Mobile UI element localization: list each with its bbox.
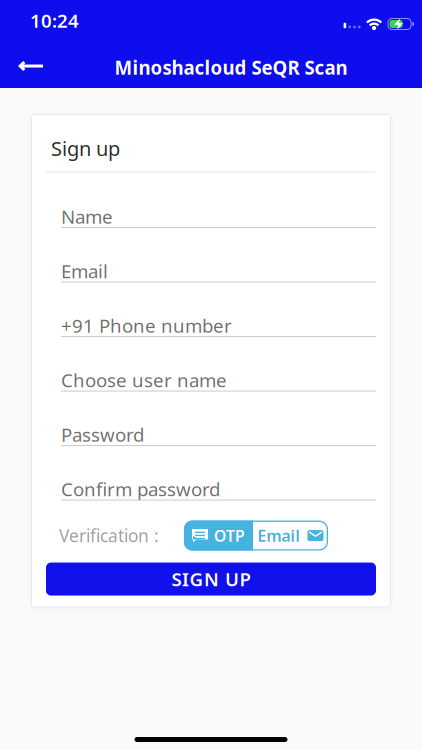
- button[interactable]: Password: [61, 392, 376, 446]
- staticText: Password: [61, 422, 144, 447]
- button[interactable]: Choose user name: [61, 337, 376, 392]
- staticText: OTP: [214, 525, 245, 546]
- staticText: Minoshacloud SeQR Scan: [114, 55, 347, 80]
- staticText: 10:24: [30, 8, 79, 33]
- button[interactable]: +91 Phone number: [61, 283, 376, 337]
- button[interactable]: OTP: [184, 521, 253, 551]
- staticText: Choose user name: [61, 368, 227, 392]
- button[interactable]: Confirm password: [61, 446, 376, 501]
- button[interactable]: Back: [0, 44, 56, 88]
- button[interactable]: Email: [61, 228, 376, 283]
- staticText: SIGN UP: [171, 567, 250, 591]
- staticText: Email: [257, 525, 300, 546]
- staticText: Sign up: [51, 135, 120, 162]
- staticText: +91 Phone number: [61, 313, 232, 338]
- staticText: Confirm password: [61, 477, 220, 501]
- staticText: Name: [61, 204, 113, 229]
- staticText: Verification :: [59, 524, 159, 547]
- button[interactable]: Name: [61, 173, 376, 228]
- button[interactable]: SIGN UP: [46, 563, 376, 596]
- button[interactable]: Email: [253, 521, 328, 551]
- staticText: Email: [61, 259, 108, 283]
